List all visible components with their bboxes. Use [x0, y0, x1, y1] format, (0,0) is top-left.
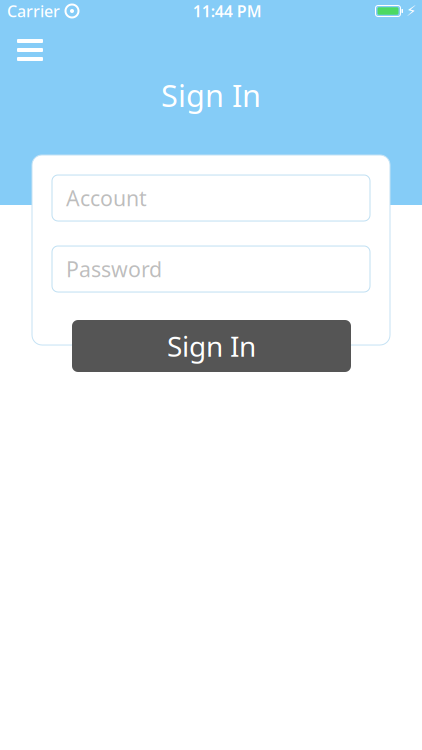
button[interactable]: Password — [52, 246, 370, 292]
button[interactable]: Menu — [0, 22, 60, 78]
staticText: Password — [66, 255, 162, 283]
staticText: 11:44 PM — [193, 0, 262, 22]
staticText: Sign In — [161, 75, 261, 115]
staticText: ⚡︎ — [406, 3, 416, 19]
staticText: Carrier — [7, 0, 60, 22]
button[interactable]: Sign In — [72, 320, 351, 372]
button[interactable]: Account — [52, 175, 370, 221]
staticText: Account — [66, 184, 147, 212]
staticText: Sign In — [167, 327, 256, 365]
